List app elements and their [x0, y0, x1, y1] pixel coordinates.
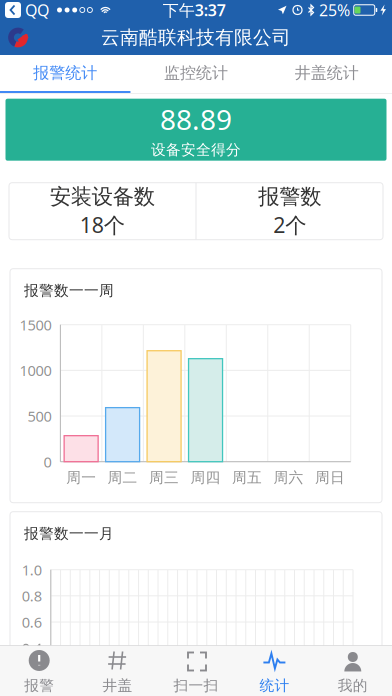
staticText: 18个	[80, 211, 125, 239]
staticText: 报警	[24, 676, 54, 694]
staticText: 下午3:37	[163, 0, 226, 21]
staticText: 周五	[232, 469, 262, 487]
staticText: 周三	[149, 469, 179, 487]
staticText: 周日	[315, 469, 345, 487]
button[interactable]: 我的	[314, 646, 392, 696]
staticText: 周四	[190, 469, 220, 487]
staticText: 0	[43, 452, 51, 471]
staticText: 我的	[338, 676, 368, 694]
button[interactable]: 井盖	[78, 646, 157, 696]
staticText: 88.89	[160, 101, 232, 138]
staticText: 2个	[273, 211, 306, 239]
staticText: 报警统计	[33, 63, 97, 83]
staticText: 安装设备数	[50, 183, 155, 210]
staticText: 周一	[66, 469, 96, 487]
staticText: 25%	[319, 0, 350, 21]
staticText: 500	[27, 406, 51, 426]
staticText: 周二	[108, 469, 138, 487]
staticText: 报警数一一周	[24, 282, 114, 300]
staticText: 1000	[19, 361, 51, 380]
staticText: 1500	[19, 315, 51, 334]
staticText: 井盖统计	[295, 63, 359, 83]
staticText: 报警数一一月	[24, 525, 114, 543]
button[interactable]: 监控统计	[131, 55, 261, 93]
staticText: 周六	[273, 469, 303, 487]
button[interactable]: 报警统计	[0, 55, 131, 93]
staticText: 0.6	[22, 612, 42, 632]
staticText: 0.4	[22, 638, 42, 658]
staticText: 云南酷联科技有限公司	[101, 26, 291, 49]
staticText: 统计	[259, 676, 289, 694]
button[interactable]: 安装设备数	[9, 183, 195, 240]
button[interactable]: 报警	[0, 646, 78, 696]
button[interactable]: 井盖统计	[261, 55, 392, 93]
staticText: 报警数	[258, 183, 321, 210]
staticText: 扫一扫	[173, 676, 218, 694]
staticText: 设备安全得分	[151, 141, 241, 159]
button[interactable]: 扫一扫	[157, 646, 235, 696]
staticText: QQ	[25, 0, 49, 21]
staticText: 1.0	[22, 560, 42, 579]
staticText: 监控统计	[164, 63, 228, 83]
button[interactable]: 报警数	[196, 183, 383, 240]
staticText: 井盖	[103, 676, 133, 694]
button[interactable]: 统计	[235, 646, 314, 696]
staticText: 0.8	[22, 586, 42, 606]
